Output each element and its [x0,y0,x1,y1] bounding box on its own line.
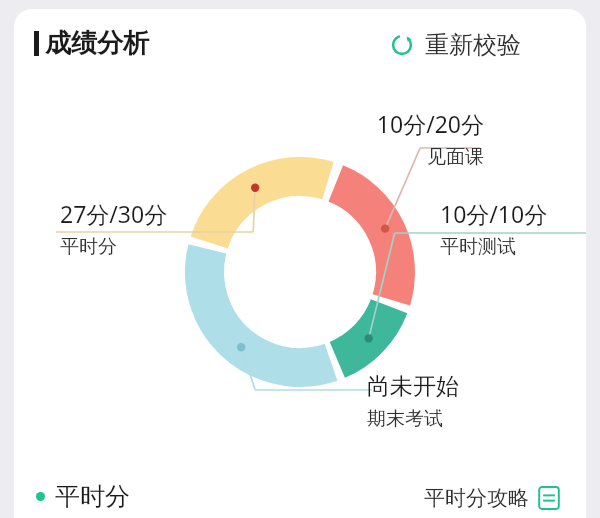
button[interactable]: 平时分攻略 [424,484,563,512]
staticText: 平时分攻略 [424,485,529,511]
button[interactable]: 27分/30分 [60,198,200,259]
staticText: 平时分 [60,235,117,259]
staticText: 重新校验 [425,30,521,60]
staticText: 10分/20分 [376,108,484,139]
staticText: 期末考试 [367,407,443,431]
staticText: 10分/10分 [440,198,548,229]
button[interactable]: 重新校验 [384,27,527,63]
staticText: 平时分 [55,481,130,512]
staticText: 成绩分析 [45,27,149,60]
staticText: 尚未开始 [367,372,459,401]
staticText: 平时测试 [440,235,516,259]
button[interactable]: 平时分 [36,481,130,512]
other: 平时分攻略 [535,484,563,512]
other: 重新校验 [390,33,414,57]
staticText: 27分/30分 [60,198,168,229]
button[interactable]: 10分/10分 [440,198,580,259]
button[interactable]: 尚未开始 [367,372,507,431]
button[interactable]: 成绩分析 [34,27,149,60]
staticText: 见面课 [427,145,484,169]
button[interactable]: 10分/20分 [349,108,484,169]
